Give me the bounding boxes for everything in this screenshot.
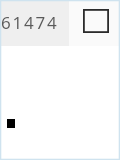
staticText: 61474 xyxy=(1,11,59,34)
button[interactable]: 61474 xyxy=(0,0,69,46)
button[interactable]: Stop xyxy=(69,0,120,46)
